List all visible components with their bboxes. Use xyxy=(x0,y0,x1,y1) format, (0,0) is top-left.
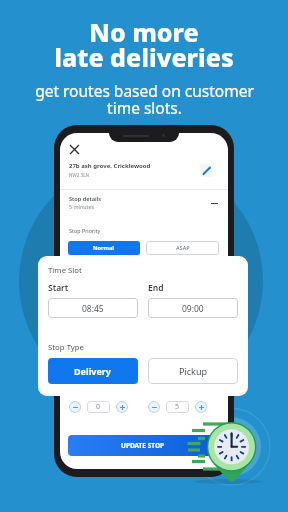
button[interactable]: Edit address xyxy=(200,164,213,177)
button[interactable]: ASAP xyxy=(146,241,219,255)
staticText: Start xyxy=(48,282,69,294)
staticText: End xyxy=(148,282,164,294)
staticText: 0 xyxy=(96,402,101,412)
staticText: 5 minutes xyxy=(69,203,95,210)
button[interactable]: Increase xyxy=(195,401,207,413)
button[interactable]: Decrease xyxy=(69,401,81,413)
staticText: 27b ash grove, Cricklewood xyxy=(69,162,151,170)
staticText: get routes based on customer time slots. xyxy=(35,80,254,118)
staticText: NW2 3LN xyxy=(69,172,90,178)
staticText: Stop Priority xyxy=(69,227,101,234)
staticText: UPDATE STOP xyxy=(121,441,165,450)
staticText: Pickup xyxy=(179,365,207,377)
button[interactable]: Collapse xyxy=(206,195,222,211)
button[interactable]: Increase xyxy=(116,401,128,413)
button[interactable]: Normal xyxy=(68,241,140,255)
staticText: Normal xyxy=(93,244,115,252)
staticText: ASAP xyxy=(176,244,190,252)
button[interactable]: Pickup xyxy=(148,358,238,384)
button[interactable]: UPDATE STOP xyxy=(68,435,218,456)
staticText: Time Slot xyxy=(48,265,82,276)
button[interactable]: Decrease xyxy=(148,401,160,413)
button[interactable]: 09:00 xyxy=(148,298,238,318)
button[interactable]: Delivery xyxy=(48,358,138,384)
staticText: No more late deliveries xyxy=(54,15,234,74)
button[interactable]: 08:45 xyxy=(48,298,138,318)
staticText: 09:00 xyxy=(182,303,204,315)
staticText: 08:45 xyxy=(82,303,104,315)
staticText: Delivery xyxy=(74,365,112,377)
button[interactable]: Close xyxy=(66,141,83,158)
staticText: 5 xyxy=(175,402,180,412)
staticText: Stop Type xyxy=(48,342,84,353)
staticText: Stop details xyxy=(69,195,101,203)
